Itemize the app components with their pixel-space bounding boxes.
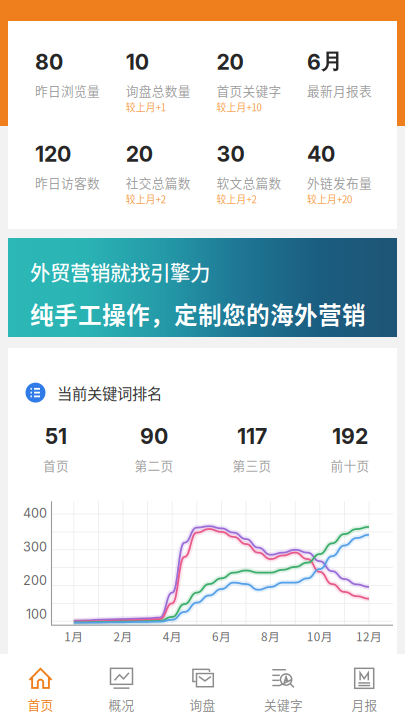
button[interactable]: 首页 (0, 654, 81, 720)
staticText: 前十页 (330, 456, 369, 474)
staticText: 当前关键词排名 (57, 381, 162, 404)
staticText: 200 (23, 573, 47, 588)
staticText: 询盘 (189, 695, 215, 714)
staticText: 1月 (64, 628, 83, 645)
staticText: 最新月报表 (307, 81, 372, 100)
staticText: 询盘总数量 (126, 81, 191, 100)
staticText: 较上月+2 (216, 192, 256, 206)
staticText: 6月 (212, 628, 231, 645)
staticText: 概况 (108, 695, 134, 714)
staticText: 第二页 (134, 456, 173, 474)
staticText: 20 (216, 49, 243, 75)
staticText: 较上月+1 (126, 100, 166, 114)
staticText: 较上月+2 (126, 192, 166, 206)
staticText: 较上月+20 (307, 192, 352, 206)
staticText: 首页 (27, 695, 53, 714)
staticText: 首页关键字 (216, 81, 281, 100)
staticText: 117 (237, 423, 267, 449)
button[interactable]: 月报 (324, 654, 405, 720)
staticText: 关键字 (264, 695, 303, 714)
staticText: 80 (35, 49, 63, 75)
staticText: 20 (126, 141, 153, 167)
staticText: 软文总篇数 (216, 173, 281, 192)
staticText: 8月 (261, 628, 280, 645)
staticText: 社交总篇数 (126, 173, 191, 192)
staticText: 纯手工操作，定制您的海外营销 (30, 296, 366, 331)
button[interactable]: 关键字 (243, 654, 324, 720)
staticText: 300 (23, 539, 47, 554)
staticText: 4月 (163, 628, 182, 645)
staticText: 30 (216, 141, 244, 167)
button[interactable]: 概况 (81, 654, 162, 720)
staticText: 100 (26, 606, 47, 622)
staticText: 120 (35, 141, 71, 167)
staticText: 6月 (307, 48, 342, 75)
staticText: 首页 (43, 456, 69, 474)
staticText: 40 (307, 141, 335, 167)
staticText: 192 (332, 423, 368, 449)
staticText: 10月 (307, 628, 333, 645)
staticText: 400 (23, 505, 47, 521)
staticText: 昨日访客数 (35, 173, 100, 192)
staticText: 较上月+10 (216, 100, 261, 114)
staticText: 昨日浏览量 (35, 81, 100, 100)
staticText: 90 (140, 423, 168, 449)
staticText: 外贸营销就找引擎力 (30, 257, 210, 286)
staticText: 第三页 (232, 456, 271, 474)
button[interactable]: 询盘 (162, 654, 243, 720)
staticText: 2月 (113, 628, 132, 645)
staticText: 月报 (351, 695, 377, 714)
staticText: 51 (45, 423, 67, 449)
staticText: 12月 (356, 628, 382, 645)
staticText: 外链发布量 (307, 173, 372, 192)
staticText: 10 (126, 49, 149, 75)
